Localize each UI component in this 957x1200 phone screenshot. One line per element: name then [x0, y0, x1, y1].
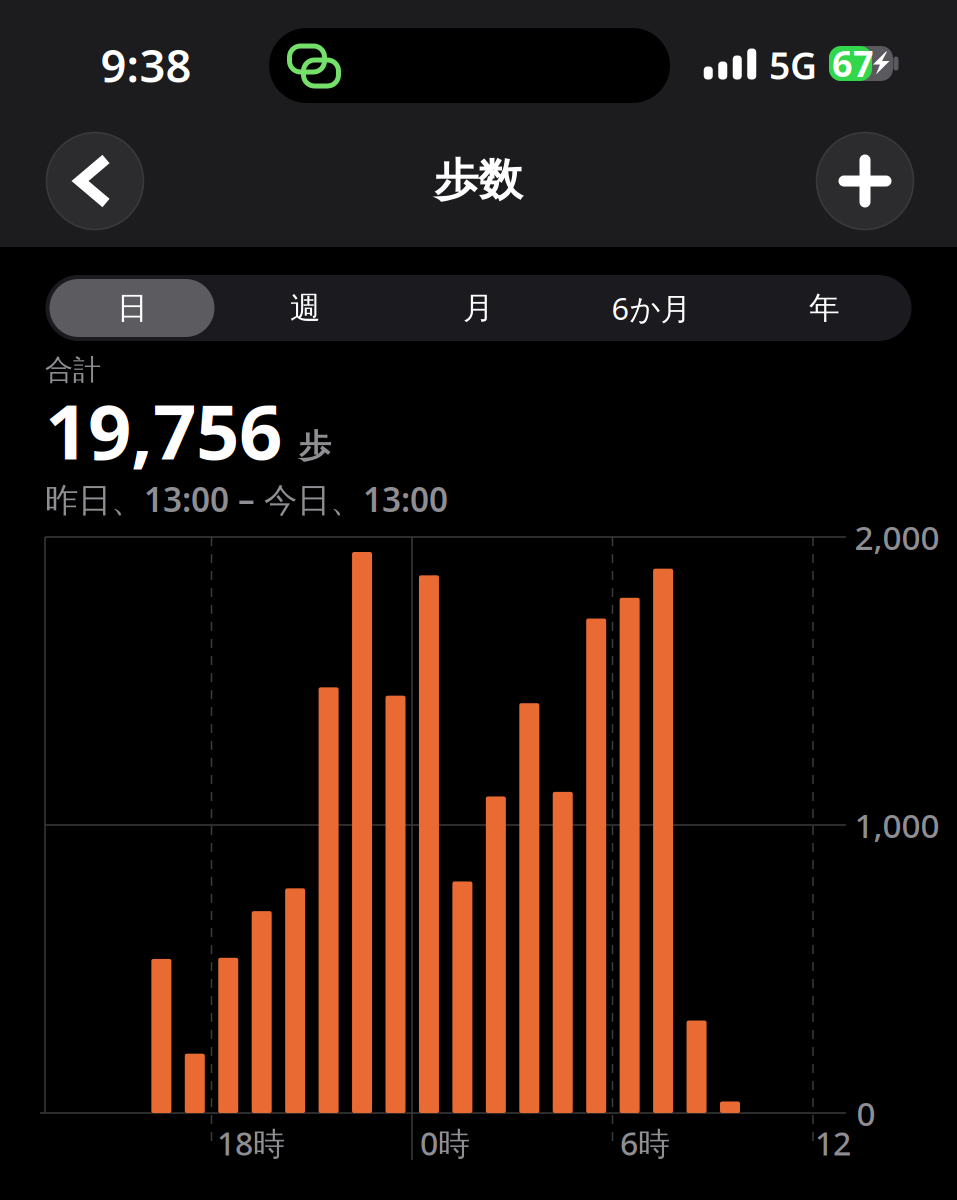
staticText: 歩数: [434, 153, 522, 207]
staticText: 週: [290, 289, 321, 327]
button[interactable]: 戻る: [46, 132, 144, 230]
staticText: 1,000: [854, 803, 939, 847]
staticText: 月: [463, 289, 494, 327]
staticText: 歩: [299, 426, 331, 466]
staticText: 年: [809, 289, 840, 327]
staticText: 合計: [45, 353, 101, 387]
button[interactable]: 日: [46, 275, 219, 341]
staticText: 12: [815, 1122, 851, 1164]
staticText: 昨日、13:00 – 今日、13:00: [45, 477, 448, 521]
staticText: 18時: [217, 1122, 285, 1164]
staticText: 2,000: [854, 515, 939, 559]
staticText: 0時: [420, 1122, 470, 1164]
button[interactable]: 月: [392, 275, 565, 341]
staticText: 日: [117, 289, 148, 327]
staticText: 0: [856, 1091, 875, 1135]
staticText: 67: [832, 39, 874, 87]
staticText: 19,756: [45, 379, 282, 480]
staticText: 5G: [769, 40, 817, 90]
button[interactable]: データを追加: [816, 132, 914, 230]
staticText: 6時: [620, 1122, 670, 1164]
button[interactable]: 週: [219, 275, 392, 341]
staticText: 6か月: [611, 288, 691, 328]
staticText: 9:38: [100, 35, 191, 95]
button[interactable]: 6か月: [565, 275, 738, 341]
button[interactable]: 年: [738, 275, 911, 341]
